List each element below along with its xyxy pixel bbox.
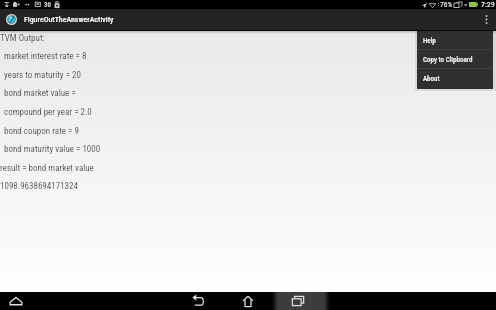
button[interactable]: About <box>417 69 493 87</box>
staticText: About <box>423 75 440 83</box>
button[interactable]: Copy to Clipboard <box>417 50 493 68</box>
staticText: 76% <box>440 0 453 9</box>
staticText: bond coupon rate = 9 <box>4 126 79 137</box>
button[interactable]: Up <box>6 295 25 307</box>
staticText: years to maturity = 20 <box>4 70 81 81</box>
button[interactable]: Home <box>240 294 256 308</box>
staticText: Help <box>423 37 436 45</box>
staticText: 7:29 <box>481 0 495 9</box>
staticText: market interest rate = 8 <box>4 51 87 62</box>
staticText: bond market value = <box>4 88 76 99</box>
button[interactable]: More options <box>476 9 496 30</box>
button[interactable]: Back <box>188 294 208 308</box>
staticText: 1098.9638694171324 <box>0 181 78 192</box>
staticText: TVM Output: <box>0 33 45 44</box>
staticText: result = bond market value <box>0 163 94 174</box>
staticText: Copy to Clipboard <box>423 56 473 64</box>
button[interactable]: Help <box>417 31 493 49</box>
staticText: 30 <box>44 1 51 9</box>
button[interactable]: Recent apps <box>289 294 307 308</box>
staticText: compound per year = 2.0 <box>4 107 92 118</box>
staticText: bond maturity value = 1000 <box>4 144 101 155</box>
staticText: FigureOutTheAnswerActivity <box>24 15 114 24</box>
